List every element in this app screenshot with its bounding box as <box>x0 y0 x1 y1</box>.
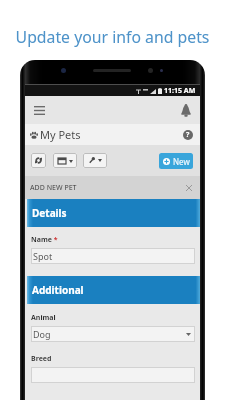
staticText: Animal <box>31 313 56 323</box>
staticText: Additional <box>32 283 84 297</box>
button[interactable]: Input field <box>31 367 195 383</box>
button[interactable]: Close <box>183 182 195 194</box>
button[interactable]: Notifications <box>176 100 196 120</box>
staticText: Details <box>32 206 67 220</box>
staticText: Dog <box>33 328 51 340</box>
button[interactable]: Help <box>180 127 196 143</box>
button[interactable]: View options <box>53 153 77 168</box>
button[interactable]: Input field <box>31 248 195 264</box>
staticText: Update your info and pets <box>0 26 225 48</box>
staticText: Breed <box>31 354 52 364</box>
button[interactable]: Tools <box>83 153 107 168</box>
staticText: Spot <box>33 250 53 262</box>
staticText: Name <box>31 235 52 245</box>
staticText: 11:15 AM <box>164 86 196 96</box>
staticText: ADD NEW PET <box>30 183 77 193</box>
staticText: New <box>173 156 190 167</box>
button[interactable]: Input field <box>31 326 195 342</box>
button[interactable]: Refresh <box>31 153 46 168</box>
staticText: * <box>52 235 58 245</box>
button[interactable]: New <box>159 153 193 169</box>
staticText: ? <box>186 130 190 140</box>
button[interactable]: Menu <box>29 100 49 120</box>
staticText: My Pets <box>40 127 81 142</box>
